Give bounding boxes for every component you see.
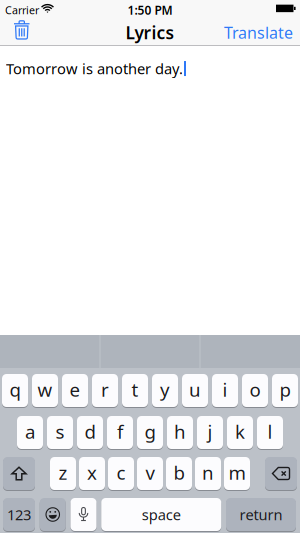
button[interactable]: b: [166, 457, 192, 490]
staticText: space: [142, 505, 181, 524]
button[interactable]: t: [122, 374, 148, 407]
staticText: i: [222, 377, 227, 402]
button[interactable]: space: [101, 498, 221, 531]
button[interactable]: h: [167, 416, 193, 449]
button[interactable]: Delete: [265, 457, 297, 490]
staticText: g: [144, 419, 155, 444]
button[interactable]: y: [152, 374, 178, 407]
button[interactable]: Emoji: [40, 498, 66, 531]
button[interactable]: a: [17, 416, 43, 449]
staticText: u: [189, 377, 201, 402]
staticText: t: [131, 377, 138, 402]
button[interactable]: s: [47, 416, 73, 449]
button[interactable]: g: [137, 416, 163, 449]
staticText: f: [117, 419, 123, 444]
staticText: j: [207, 419, 212, 444]
button[interactable]: q: [2, 374, 28, 407]
button[interactable]: Shift: [3, 457, 35, 490]
button[interactable]: d: [77, 416, 103, 449]
staticText: w: [37, 377, 52, 402]
staticText: Translate: [224, 22, 293, 43]
button[interactable]: return: [226, 498, 296, 531]
button[interactable]: f: [107, 416, 133, 449]
button[interactable]: Numbers: [3, 498, 35, 531]
staticText: s: [55, 419, 64, 444]
staticText: m: [228, 460, 245, 485]
staticText: d: [84, 419, 95, 444]
staticText: 1:50 PM: [127, 2, 172, 18]
staticText: r: [101, 377, 109, 402]
button[interactable]: x: [79, 457, 105, 490]
button[interactable]: z: [50, 457, 76, 490]
button[interactable]: u: [182, 374, 208, 407]
staticText: e: [69, 377, 80, 402]
button[interactable]: Dictate: [70, 498, 96, 531]
staticText: Tomorrow is another day.: [6, 59, 183, 78]
staticText: h: [174, 419, 186, 444]
staticText: x: [87, 460, 97, 485]
button[interactable]: j: [197, 416, 223, 449]
staticText: Carrier: [5, 3, 39, 17]
button[interactable]: Translate: [224, 22, 300, 43]
button[interactable]: l: [257, 416, 283, 449]
staticText: l: [267, 419, 272, 444]
button[interactable]: n: [195, 457, 221, 490]
staticText: q: [9, 377, 20, 402]
staticText: Lyrics: [125, 21, 174, 44]
button[interactable]: Delete: [0, 23, 37, 42]
staticText: b: [173, 460, 184, 485]
button[interactable]: c: [108, 457, 134, 490]
staticText: return: [239, 505, 282, 524]
button[interactable]: i: [212, 374, 238, 407]
staticText: v: [145, 460, 154, 485]
button[interactable]: k: [227, 416, 253, 449]
staticText: p: [279, 377, 290, 402]
staticText: o: [249, 377, 260, 402]
staticText: c: [116, 460, 125, 485]
staticText: 123: [7, 505, 31, 524]
button[interactable]: v: [137, 457, 163, 490]
staticText: z: [58, 460, 67, 485]
button[interactable]: e: [62, 374, 88, 407]
staticText: y: [160, 377, 170, 402]
staticText: n: [202, 460, 214, 485]
button[interactable]: p: [272, 374, 298, 407]
button[interactable]: m: [224, 457, 250, 490]
staticText: a: [25, 419, 35, 444]
button[interactable]: o: [242, 374, 268, 407]
button[interactable]: w: [32, 374, 58, 407]
staticText: k: [235, 419, 245, 444]
button[interactable]: r: [92, 374, 118, 407]
